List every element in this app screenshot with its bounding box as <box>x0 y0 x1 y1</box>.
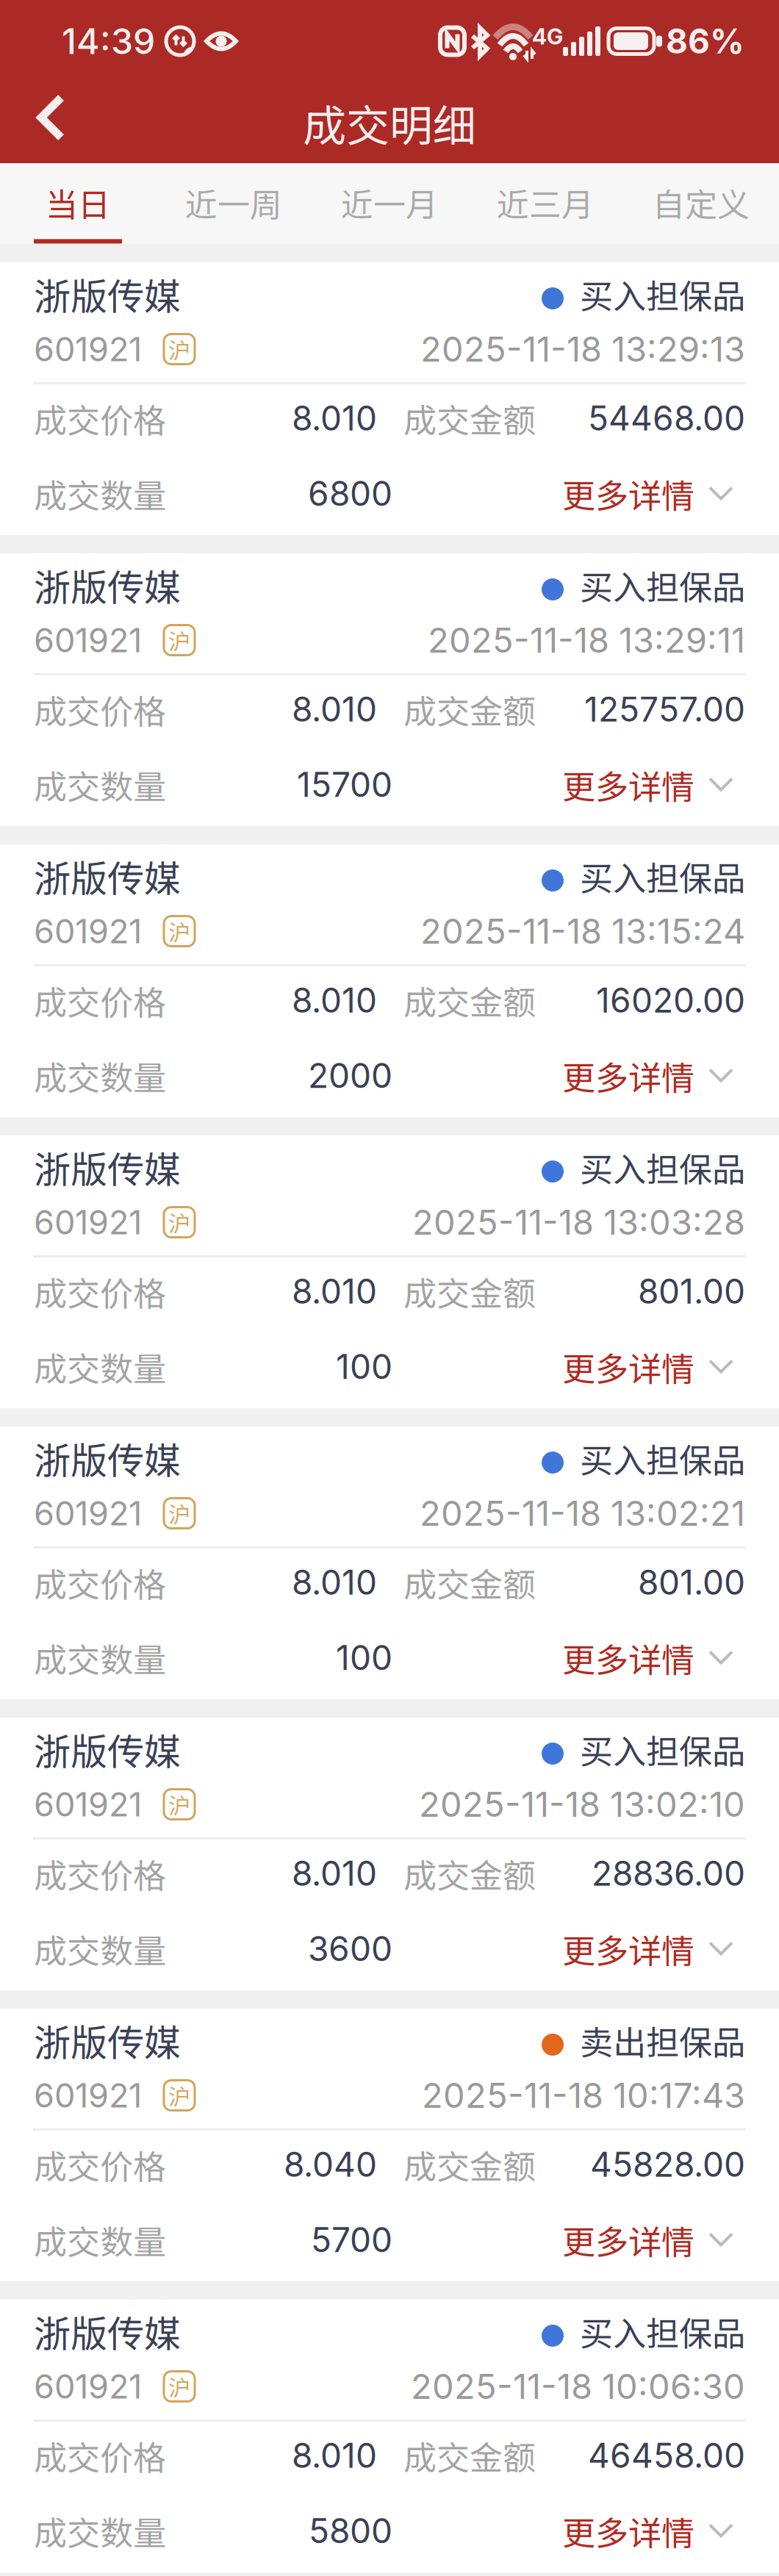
staticText: 成交数量 <box>34 1634 166 1682</box>
staticText: 成交价格 <box>34 685 166 733</box>
staticText: 801.00 <box>638 1271 745 1312</box>
staticText: 3600 <box>308 1928 392 1969</box>
staticText: 8.010 <box>292 1853 377 1894</box>
staticText: 成交金额 <box>403 1558 536 1606</box>
button[interactable]: 更多详情 <box>562 470 745 518</box>
staticText: 601921 <box>34 2366 142 2406</box>
button[interactable]: 更多详情 <box>562 1634 745 1682</box>
staticText: 更多详情 <box>562 1925 694 1973</box>
button[interactable]: 更多详情 <box>562 1343 745 1391</box>
staticText: 成交价格 <box>34 1267 166 1315</box>
staticText: 8.010 <box>292 980 377 1021</box>
staticText: 成交价格 <box>34 976 166 1024</box>
staticText: 浙版传媒 <box>34 2305 181 2358</box>
staticText: 8.010 <box>292 1271 377 1312</box>
staticText: 当日 <box>46 179 110 226</box>
staticText: 5800 <box>309 2510 392 2551</box>
staticText: 601921 <box>34 329 142 369</box>
staticText: 成交数量 <box>34 2507 166 2555</box>
staticText: 8.010 <box>292 2435 377 2476</box>
staticText: 成交金额 <box>403 2432 536 2480</box>
staticText: 15700 <box>297 764 392 805</box>
staticText: 更多详情 <box>562 761 694 809</box>
staticText: 沪 <box>168 1206 190 1238</box>
staticText: 成交数量 <box>34 1925 166 1973</box>
staticText: 成交金额 <box>403 976 536 1024</box>
staticText: 卖出担保品 <box>580 2016 745 2064</box>
button[interactable]: 更多详情 <box>562 1925 745 1973</box>
staticText: 浙版传媒 <box>34 1432 181 1485</box>
staticText: 46458.00 <box>588 2435 745 2476</box>
button[interactable]: Back <box>0 84 87 162</box>
staticText: 601921 <box>34 2075 142 2115</box>
staticText: 2025-11-18 13:29:13 <box>420 328 745 370</box>
staticText: 浙版传媒 <box>34 2014 181 2067</box>
staticText: 买入担保品 <box>580 2307 745 2355</box>
staticText: 沪 <box>168 1788 190 1820</box>
staticText: 成交数量 <box>34 1343 166 1391</box>
staticText: 更多详情 <box>562 1052 694 1100</box>
staticText: 8.010 <box>292 1562 377 1603</box>
staticText: 2025-11-18 13:29:11 <box>428 619 745 661</box>
button[interactable]: 更多详情 <box>562 2507 745 2555</box>
staticText: 2025-11-18 10:06:30 <box>411 2366 745 2407</box>
staticText: 更多详情 <box>562 2216 694 2264</box>
staticText: 近一月 <box>341 179 438 226</box>
staticText: 2000 <box>308 1055 392 1096</box>
staticText: 成交数量 <box>34 761 166 809</box>
staticText: 14:39 <box>62 20 155 63</box>
staticText: 沪 <box>168 624 190 656</box>
staticText: 601921 <box>34 1493 142 1533</box>
staticText: 28836.00 <box>592 1853 745 1894</box>
staticText: 成交金额 <box>403 1267 536 1315</box>
staticText: 601921 <box>34 911 142 951</box>
staticText: 601921 <box>34 1784 142 1824</box>
button[interactable]: 当日 <box>0 163 156 244</box>
staticText: 2025-11-18 13:02:10 <box>419 1783 745 1825</box>
staticText: 成交金额 <box>403 2140 536 2188</box>
staticText: 100 <box>336 1346 392 1387</box>
staticText: 买入担保品 <box>580 561 745 609</box>
staticText: 成交价格 <box>34 1849 166 1897</box>
button[interactable]: 近一周 <box>156 163 312 244</box>
staticText: 16020.00 <box>596 980 745 1021</box>
staticText: 买入担保品 <box>580 1725 745 1773</box>
staticText: 近三月 <box>497 179 594 226</box>
staticText: 6800 <box>308 473 392 514</box>
staticText: 浙版传媒 <box>34 558 181 612</box>
staticText: 2025-11-18 10:17:43 <box>422 2074 745 2116</box>
button[interactable]: 近一月 <box>312 163 467 244</box>
staticText: 沪 <box>168 915 190 947</box>
staticText: 125757.00 <box>584 689 745 730</box>
button[interactable]: 自定义 <box>623 163 779 244</box>
staticText: 买入担保品 <box>580 270 745 318</box>
button[interactable]: 更多详情 <box>562 2216 745 2264</box>
staticText: 成交价格 <box>34 1558 166 1606</box>
staticText: 成交价格 <box>34 2140 166 2188</box>
staticText: 4G <box>532 23 563 50</box>
staticText: 浙版传媒 <box>34 1723 181 1776</box>
staticText: 买入担保品 <box>580 1434 745 1482</box>
staticText: 近一周 <box>185 179 282 226</box>
button[interactable]: 更多详情 <box>562 1052 745 1100</box>
staticText: 沪 <box>168 2370 190 2402</box>
staticText: 更多详情 <box>562 1343 694 1391</box>
staticText: 2025-11-18 13:02:21 <box>420 1492 745 1534</box>
staticText: 成交数量 <box>34 470 166 518</box>
staticText: 买入担保品 <box>580 852 745 900</box>
staticText: 沪 <box>168 333 190 365</box>
staticText: 沪 <box>168 1497 190 1529</box>
button[interactable]: 更多详情 <box>562 761 745 809</box>
staticText: 8.040 <box>284 2144 377 2185</box>
staticText: 更多详情 <box>562 2507 694 2555</box>
staticText: 86% <box>666 21 744 62</box>
staticText: 更多详情 <box>562 470 694 518</box>
button[interactable]: 近三月 <box>467 163 623 244</box>
staticText: 买入担保品 <box>580 1143 745 1191</box>
staticText: 成交数量 <box>34 2216 166 2264</box>
staticText: 2025-11-18 13:15:24 <box>420 910 745 952</box>
staticText: 5700 <box>311 2219 392 2260</box>
staticText: 沪 <box>168 2079 190 2111</box>
staticText: 浙版传媒 <box>34 849 181 903</box>
staticText: 54468.00 <box>588 398 745 439</box>
